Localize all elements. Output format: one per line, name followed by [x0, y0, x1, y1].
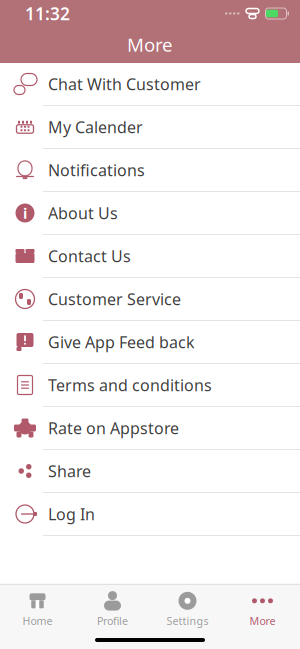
- button[interactable]: Terms and conditions: [0, 364, 300, 407]
- button[interactable]: Contact Us: [0, 235, 300, 278]
- button[interactable]: i: [0, 192, 300, 235]
- button[interactable]: Customer Service: [0, 278, 300, 321]
- button[interactable]: More: [225, 585, 300, 633]
- staticText: Home: [22, 614, 52, 628]
- button[interactable]: Share: [0, 450, 300, 493]
- button[interactable]: Chat With Customer: [0, 63, 300, 106]
- button[interactable]: Settings: [150, 585, 225, 633]
- staticText: Rate on Appstore: [48, 417, 179, 439]
- staticText: i: [23, 203, 27, 223]
- button[interactable]: Rate on Appstore: [0, 407, 300, 450]
- button[interactable]: Notifications: [0, 149, 300, 192]
- button[interactable]: Give App Feed back: [0, 321, 300, 364]
- staticText: More: [127, 32, 173, 57]
- button[interactable]: My Calender: [0, 106, 300, 149]
- staticText: Profile: [97, 614, 128, 628]
- staticText: Terms and conditions: [48, 374, 212, 396]
- staticText: About Us: [48, 202, 118, 224]
- staticText: Settings: [166, 614, 208, 628]
- staticText: Notifications: [48, 159, 145, 181]
- button[interactable]: Home: [0, 585, 75, 633]
- staticText: Share: [48, 460, 91, 482]
- staticText: Contact Us: [48, 245, 131, 267]
- staticText: Log In: [48, 503, 95, 525]
- staticText: 11:32: [25, 2, 70, 25]
- button[interactable]: Log In: [0, 493, 300, 536]
- staticText: Chat With Customer: [48, 73, 201, 95]
- button[interactable]: Profile: [75, 585, 150, 633]
- staticText: Customer Service: [48, 288, 181, 310]
- staticText: Give App Feed back: [48, 331, 195, 353]
- staticText: My Calender: [48, 116, 143, 138]
- staticText: More: [249, 614, 275, 628]
